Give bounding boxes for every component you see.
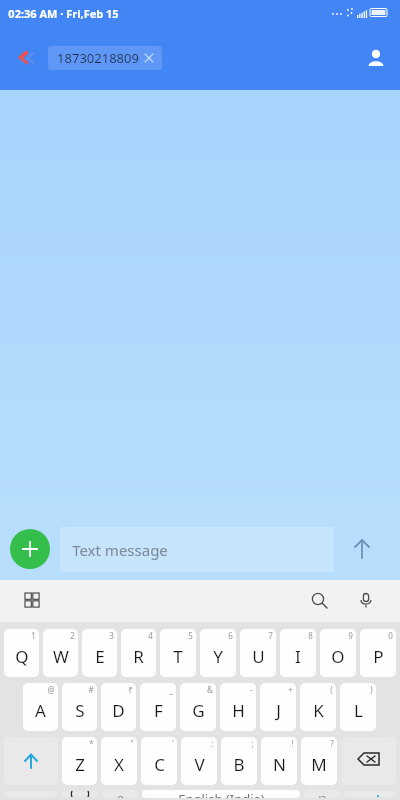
button[interactable]: 2 (43, 629, 78, 677)
staticText: S (75, 699, 85, 722)
staticText: 8 (308, 630, 313, 641)
staticText: L (354, 699, 363, 722)
button[interactable]: 8 (280, 629, 316, 677)
staticText: W (53, 645, 69, 668)
button[interactable]: - (220, 683, 256, 731)
button[interactable]: 1 (4, 629, 39, 677)
staticText: C (154, 753, 165, 776)
staticText: Text message (72, 540, 168, 560)
staticText: H (232, 699, 245, 722)
staticText: # (88, 684, 94, 695)
staticText: U (252, 645, 265, 668)
staticText: - (250, 684, 253, 695)
button[interactable]: ; (221, 737, 257, 785)
button[interactable]: 4 (121, 629, 156, 677)
staticText: M (311, 753, 327, 776)
button[interactable]: 6 (200, 629, 236, 677)
staticText: Q (15, 645, 29, 668)
staticText: 0 (388, 630, 393, 641)
button[interactable]: , (102, 790, 138, 798)
staticText: 6 (228, 630, 233, 641)
button[interactable]: English (India) (142, 790, 300, 798)
button[interactable]: 0 (360, 629, 396, 677)
staticText: 7 (268, 630, 273, 641)
staticText: X (114, 753, 124, 776)
button[interactable]: 3 (82, 629, 117, 677)
staticText: R (133, 645, 144, 668)
staticText: ? (330, 738, 334, 749)
staticText: D (112, 699, 125, 722)
staticText: " (130, 738, 134, 749)
staticText: & (207, 684, 213, 695)
button[interactable]: 9 (320, 629, 356, 677)
button[interactable]: ? (301, 737, 337, 785)
staticText: K (313, 699, 324, 722)
button[interactable]: Back (0, 34, 48, 82)
staticText: N (273, 753, 286, 776)
staticText: A (35, 699, 46, 722)
staticText: ( (330, 684, 333, 695)
staticText: T (173, 645, 183, 668)
staticText: 2 (70, 630, 75, 641)
staticText: I (295, 645, 301, 668)
button[interactable]: ₹ (101, 683, 136, 731)
staticText: 02:36 AM · Fri,Feb 15 (8, 6, 119, 21)
staticText: ; (251, 738, 254, 749)
staticText: B (233, 753, 245, 776)
staticText: Y (213, 645, 223, 668)
button[interactable]: @ (23, 683, 58, 731)
staticText: E (95, 645, 105, 668)
button[interactable]: Backspace (341, 737, 396, 785)
button[interactable]: Contacts (352, 34, 400, 82)
staticText: ) (370, 684, 373, 695)
staticText: 1 (31, 630, 36, 641)
staticText: O (331, 645, 345, 668)
button[interactable]: Voice input (348, 583, 384, 619)
button[interactable]: " (101, 737, 137, 785)
button[interactable]: Search (302, 583, 338, 619)
button[interactable]: ) (340, 683, 376, 731)
button[interactable]: 18730218809 (48, 46, 162, 70)
button[interactable]: ! (261, 737, 297, 785)
button[interactable]: : (181, 737, 217, 785)
button[interactable]: + (260, 683, 296, 731)
staticText: V (194, 753, 205, 776)
staticText: 4 (148, 630, 153, 641)
button[interactable]: & (180, 683, 216, 731)
staticText: F (154, 699, 163, 722)
staticText: ₹ (128, 684, 133, 695)
button[interactable]: Send (334, 521, 390, 577)
button[interactable]: 5 (160, 629, 196, 677)
button[interactable]: !? (304, 790, 340, 798)
button[interactable]: # (62, 683, 97, 731)
button[interactable]: Menu (16, 584, 50, 618)
staticText: @ (47, 684, 55, 695)
button[interactable]: ( (300, 683, 336, 731)
button[interactable]: Add attachment (10, 529, 50, 569)
staticText: P (373, 645, 384, 668)
button[interactable]: Enter (344, 791, 396, 797)
button[interactable]: Shift (4, 737, 58, 785)
button[interactable]: Text message (60, 527, 334, 572)
staticText: English (India) (178, 790, 265, 798)
button[interactable]: * (62, 737, 97, 785)
button[interactable]: Emoji (61, 791, 98, 797)
button[interactable]: _ (140, 683, 176, 731)
staticText: : (211, 738, 214, 749)
button[interactable]: 7 (240, 629, 276, 677)
staticText: 9 (348, 630, 353, 641)
staticText: ! (291, 738, 294, 749)
button[interactable]: ' (141, 737, 177, 785)
staticText: ' (172, 738, 174, 749)
staticText: * (89, 738, 94, 749)
staticText: G (192, 699, 205, 722)
staticText: Z (75, 753, 85, 776)
staticText: + (288, 684, 293, 695)
staticText: J (276, 699, 281, 722)
staticText: 5 (188, 630, 193, 641)
staticText: !? (318, 793, 326, 798)
staticText: _ (169, 684, 173, 695)
staticText: 18730218809 (57, 49, 139, 67)
